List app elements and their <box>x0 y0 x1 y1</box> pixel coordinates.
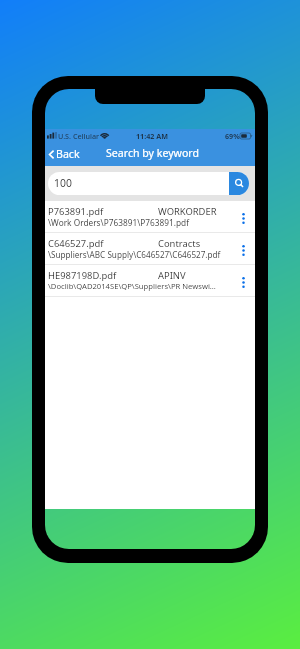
staticText: \Work Orders\P763891\P763891.pdf <box>48 217 190 228</box>
staticText: Search by keyword <box>106 146 199 160</box>
button[interactable]: 100 <box>48 172 229 195</box>
staticText: C646527.pdf <box>48 237 104 250</box>
button[interactable]: P763891.pdf <box>45 201 255 233</box>
staticText: Contracts <box>158 237 201 250</box>
staticText: 69% <box>225 131 240 141</box>
staticText: 11:42 AM <box>136 131 169 141</box>
staticText: \Suppliers\ABC Supply\C646527\C646527.pd… <box>48 249 221 260</box>
button[interactable]: Search <box>229 172 249 195</box>
staticText: WORKORDER <box>158 205 217 218</box>
button[interactable]: C646527.pdf <box>45 233 255 265</box>
staticText: Back <box>56 147 80 161</box>
button[interactable]: HE987198D.pdf <box>45 265 255 297</box>
button[interactable]: More options <box>231 233 255 264</box>
staticText: U.S. Cellular <box>58 131 100 141</box>
button[interactable]: More options <box>231 265 255 296</box>
button[interactable]: Back <box>45 144 83 164</box>
button[interactable]: More options <box>231 201 255 232</box>
staticText: P763891.pdf <box>48 205 104 218</box>
staticText: APINV <box>158 269 186 282</box>
staticText: \Doclib\QAD2014SE\QP\Suppliers\PR Newswi… <box>48 281 216 291</box>
staticText: 100 <box>54 176 72 190</box>
staticText: HE987198D.pdf <box>48 269 117 282</box>
